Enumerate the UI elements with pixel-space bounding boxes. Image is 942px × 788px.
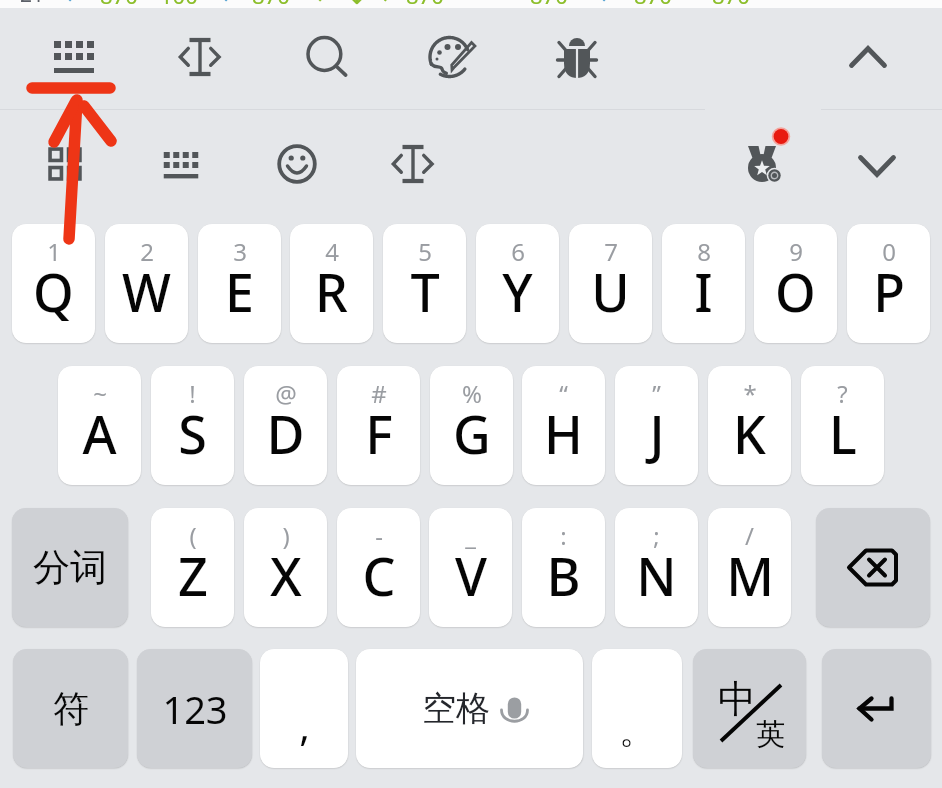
staticText: ~ xyxy=(93,377,107,410)
staticText: - xyxy=(375,519,383,552)
button[interactable]: * xyxy=(708,366,791,485)
button[interactable]: / xyxy=(708,508,791,627)
staticText: G xyxy=(453,398,491,469)
staticText: ← xyxy=(598,0,620,10)
staticText: 870 xyxy=(406,0,444,10)
button[interactable]: ? xyxy=(801,366,884,485)
staticText: I xyxy=(694,256,713,327)
staticText: J xyxy=(649,398,665,469)
button[interactable]: Keyboard xyxy=(142,126,220,204)
button[interactable]: Search xyxy=(289,18,367,96)
staticText: 100 xyxy=(160,0,198,10)
staticText: 4 xyxy=(325,235,339,268)
button[interactable]: 8 xyxy=(662,224,745,343)
button[interactable]: 空格 xyxy=(356,649,583,768)
button[interactable]: _ xyxy=(429,508,512,627)
staticText: 7 xyxy=(604,235,618,268)
button[interactable]: Text cursor xyxy=(374,125,452,203)
button[interactable]: 符 xyxy=(13,649,128,768)
button[interactable]: - xyxy=(337,508,420,627)
staticText: ; xyxy=(653,519,660,552)
staticText: 123 xyxy=(162,683,228,735)
staticText: “ xyxy=(559,377,568,410)
button[interactable]: , xyxy=(260,649,348,768)
staticText: 870 xyxy=(100,0,138,10)
staticText: @ xyxy=(275,377,297,410)
button[interactable]: 7 xyxy=(569,224,652,343)
button[interactable]: Keyboard layout xyxy=(34,17,114,97)
staticText: 6 xyxy=(511,235,525,268)
staticText: Z xyxy=(178,540,208,611)
button[interactable]: 2 xyxy=(105,224,188,343)
button[interactable]: Apps xyxy=(26,125,104,203)
staticText: L xyxy=(829,398,857,469)
staticText: U xyxy=(591,256,630,327)
button[interactable]: 4 xyxy=(290,224,373,343)
button[interactable]: Rewards xyxy=(724,126,802,204)
staticText: N xyxy=(636,540,677,611)
button[interactable]: Emoji xyxy=(258,125,336,203)
button[interactable]: 9 xyxy=(754,224,837,343)
staticText: ? xyxy=(837,377,848,410)
button[interactable]: @ xyxy=(244,366,327,485)
button[interactable]: 0 xyxy=(847,224,930,343)
button[interactable]: 6 xyxy=(476,224,559,343)
staticText: # xyxy=(371,377,387,410)
staticText: V xyxy=(455,540,487,611)
staticText: 21 xyxy=(20,0,45,9)
staticText: 符 xyxy=(53,686,89,731)
button[interactable]: “ xyxy=(522,366,605,485)
staticText: 英 xyxy=(756,716,785,753)
button[interactable]: Theme xyxy=(411,18,489,96)
button[interactable]: Collapse xyxy=(829,18,907,96)
staticText: P xyxy=(873,256,905,327)
button[interactable]: 5 xyxy=(383,224,466,343)
button[interactable]: Backspace xyxy=(816,508,930,627)
button[interactable]: Enter xyxy=(822,649,931,768)
button[interactable]: Chinese English toggle xyxy=(693,649,806,768)
button[interactable]: ; xyxy=(615,508,698,627)
staticText: F xyxy=(365,398,393,469)
staticText: % xyxy=(462,377,482,410)
button[interactable]: ) xyxy=(244,508,327,627)
button[interactable]: 123 xyxy=(137,649,252,768)
button[interactable]: % xyxy=(430,366,513,485)
staticText: 1 xyxy=(47,235,61,268)
staticText: A xyxy=(82,398,117,469)
staticText: W xyxy=(122,256,171,327)
staticText: * xyxy=(743,377,757,410)
button[interactable]: 3 xyxy=(198,224,281,343)
staticText: ← xyxy=(64,0,86,10)
staticText: 8 xyxy=(697,235,711,268)
staticText: Y xyxy=(502,256,533,327)
staticText: ( xyxy=(189,519,197,552)
staticText: 870 xyxy=(252,0,290,10)
staticText: ↓ xyxy=(346,0,368,10)
button[interactable]: Feedback xyxy=(538,18,616,96)
staticText: ← xyxy=(314,0,336,10)
staticText: 870 xyxy=(712,0,750,10)
staticText: ! xyxy=(189,377,196,410)
button[interactable]: ! xyxy=(151,366,234,485)
staticText: : xyxy=(560,519,567,552)
staticText: M xyxy=(726,540,774,611)
staticText: _ xyxy=(465,519,476,552)
staticText: T xyxy=(410,256,440,327)
button[interactable]: Text cursor xyxy=(161,18,239,96)
button[interactable]: Hide keyboard xyxy=(838,127,916,205)
staticText: Q xyxy=(33,256,74,327)
button[interactable]: # xyxy=(337,366,420,485)
button[interactable]: 1 xyxy=(12,224,95,343)
button[interactable]: ~ xyxy=(58,366,141,485)
staticText: E xyxy=(225,256,254,327)
staticText: 870 xyxy=(530,0,568,10)
button[interactable]: ” xyxy=(615,366,698,485)
staticText: C xyxy=(362,540,396,611)
staticText: O xyxy=(775,256,816,327)
staticText: R xyxy=(315,256,348,327)
button[interactable]: : xyxy=(522,508,605,627)
button[interactable]: ( xyxy=(151,508,234,627)
button[interactable]: 分词 xyxy=(12,508,128,627)
button[interactable]: 。 xyxy=(592,649,682,768)
staticText: 870 xyxy=(634,0,672,10)
